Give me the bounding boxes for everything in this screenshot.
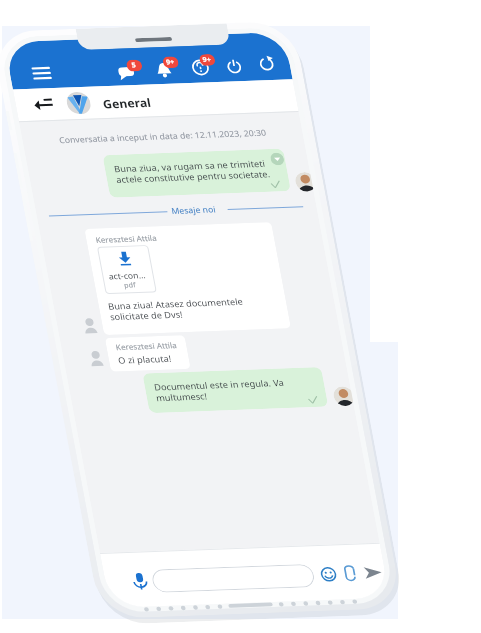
button[interactable]: Notifications (144, 45, 192, 90)
staticText: 9+ (161, 53, 180, 71)
staticText: pdf (100, 258, 160, 313)
button[interactable]: Voice message (123, 565, 158, 599)
button[interactable]: Keresztesi Attila (42, 141, 333, 416)
staticText: Documentul este in regula. Va multumesc! (144, 320, 296, 460)
button[interactable]: Notifications (108, 48, 155, 93)
button[interactable]: Notifications (181, 42, 228, 88)
staticText: Buna ziua! Atasez documentele solicitate… (98, 236, 255, 382)
staticText: 9+ (198, 51, 217, 69)
staticText: Conversatia a inceput in data de: 12.11.… (17, 4, 308, 269)
staticText: Mesaje noi (166, 184, 222, 236)
staticText: act-con... (103, 253, 151, 298)
button[interactable]: Buna ziua, va rugam sa ne trimiteti acte… (86, 70, 308, 276)
button[interactable]: Keresztesi Attila (91, 300, 204, 406)
staticText: Keresztesi Attila (110, 313, 182, 379)
button[interactable]: Menu (26, 59, 57, 88)
button[interactable]: Refresh (250, 48, 283, 80)
button[interactable]: Back (27, 89, 59, 119)
staticText: O zi placuta! (112, 329, 177, 389)
button[interactable]: Attach file (334, 558, 366, 589)
button[interactable] (141, 494, 325, 633)
button[interactable]: Emoji (314, 560, 343, 588)
button[interactable]: Power (217, 50, 251, 82)
staticText: Buna ziua, va rugam sa ne trimiteti acte… (104, 90, 281, 253)
staticText: Keresztesi Attila (90, 205, 162, 271)
button[interactable]: Send (357, 557, 389, 588)
staticText: 5 (127, 58, 141, 73)
button[interactable]: Documentul este in regula. Va multumesc! (127, 289, 344, 491)
staticText: General (95, 73, 158, 132)
